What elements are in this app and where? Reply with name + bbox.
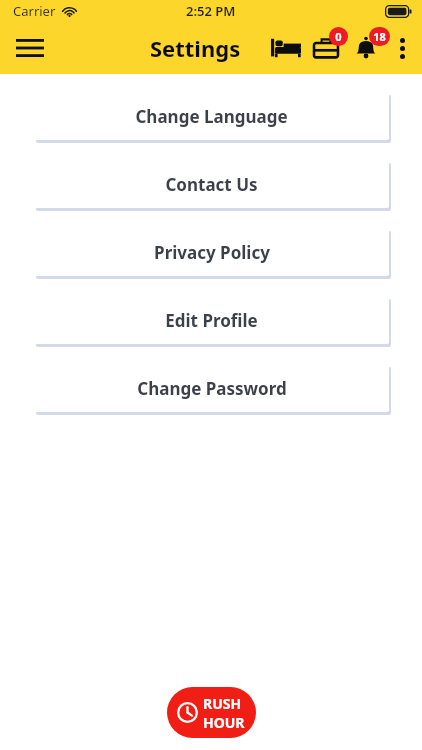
- button[interactable]: RUSH: [167, 687, 256, 738]
- staticText: HOUR: [203, 713, 245, 732]
- button[interactable]: Bookings, 0 new: [306, 28, 346, 68]
- staticText: Change Language: [135, 105, 288, 128]
- button[interactable]: Change Password: [34, 365, 389, 413]
- staticText: Carrier: [13, 2, 56, 20]
- button[interactable]: Privacy Policy: [34, 229, 389, 277]
- button[interactable]: Edit Profile: [34, 297, 389, 345]
- button[interactable]: Notifications, 18 new: [346, 28, 386, 68]
- staticText: Contact Us: [165, 173, 258, 196]
- staticText: Settings: [150, 33, 241, 63]
- staticText: 2:52 PM: [186, 2, 236, 20]
- staticText: Change Password: [137, 377, 287, 400]
- staticText: Edit Profile: [165, 309, 258, 332]
- staticText: Privacy Policy: [154, 241, 270, 264]
- button[interactable]: Contact Us: [34, 161, 389, 209]
- button[interactable]: Change Language: [34, 93, 389, 141]
- button[interactable]: Rooms: [266, 28, 306, 68]
- staticText: 18: [373, 29, 386, 44]
- staticText: 0: [335, 29, 342, 44]
- button[interactable]: More options: [386, 32, 418, 64]
- staticText: RUSH: [203, 694, 242, 713]
- button[interactable]: Menu: [8, 26, 52, 70]
